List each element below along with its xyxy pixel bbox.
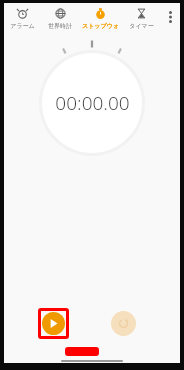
button[interactable]: 世界時計 bbox=[41, 3, 79, 34]
button[interactable]: Start bbox=[42, 312, 65, 335]
button[interactable]: More options bbox=[160, 3, 180, 34]
button[interactable]: アラーム bbox=[4, 3, 41, 34]
button[interactable]: タイマー bbox=[122, 3, 160, 34]
staticText: 世界時計 bbox=[48, 22, 72, 30]
staticText: ストップウォ bbox=[82, 22, 119, 30]
button[interactable]: Reset bbox=[111, 311, 136, 336]
button[interactable]: ストップウォ bbox=[79, 3, 122, 34]
staticText: 00:00.00 bbox=[55, 90, 130, 116]
staticText: タイマー bbox=[129, 22, 154, 30]
staticText: アラーム bbox=[10, 22, 35, 30]
